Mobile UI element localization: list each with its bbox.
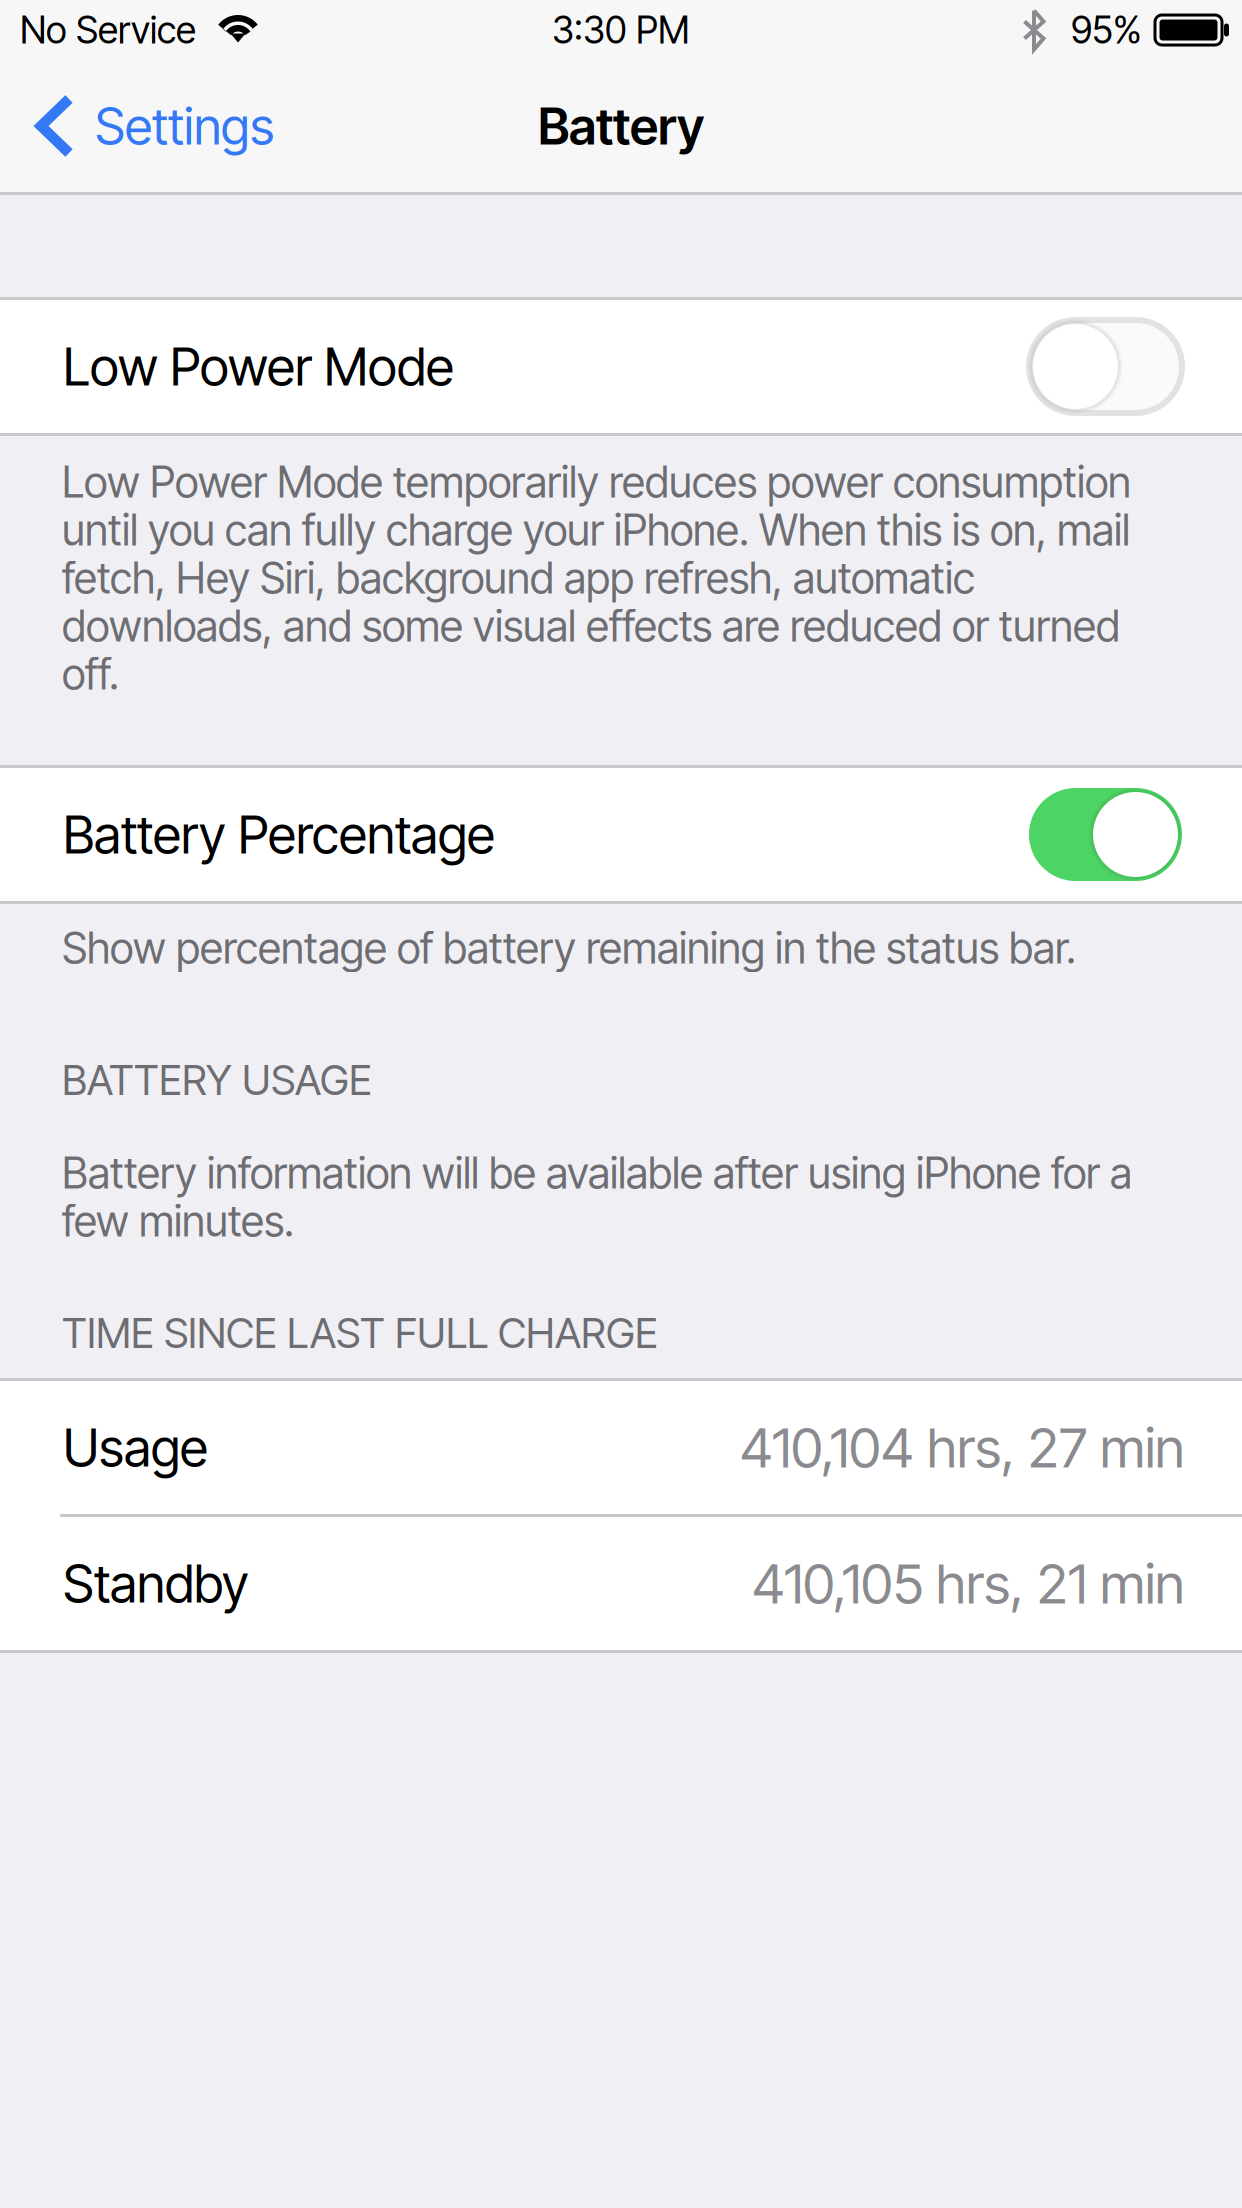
- staticText: 95%: [1071, 7, 1142, 53]
- staticText: Show percentage of battery remaining in …: [62, 922, 1076, 974]
- button[interactable]: Low Power Mode: [0, 300, 1242, 433]
- staticText: Battery: [538, 95, 704, 157]
- staticText: 410,105 hrs, 21 min: [752, 1550, 1184, 1616]
- staticText: Settings: [95, 95, 274, 157]
- button[interactable]: Battery Percentage: [0, 768, 1242, 901]
- staticText: few minutes.: [62, 1195, 294, 1247]
- staticText: BATTERY USAGE: [62, 1055, 372, 1105]
- staticText: 410,104 hrs, 27 min: [740, 1414, 1184, 1480]
- button[interactable]: Back to Settings: [0, 70, 298, 182]
- staticText: Low Power Mode: [63, 335, 454, 398]
- staticText: Low Power Mode temporarily reduces power…: [62, 456, 1131, 508]
- staticText: Usage: [63, 1416, 208, 1479]
- staticText: Battery information will be available af…: [62, 1147, 1132, 1199]
- staticText: fetch, Hey Siri, background app refresh,…: [62, 552, 975, 604]
- staticText: Battery Percentage: [63, 803, 495, 866]
- staticText: Standby: [63, 1552, 249, 1615]
- staticText: off.: [62, 648, 119, 700]
- staticText: No Service: [20, 7, 196, 53]
- staticText: 3:30 PM: [552, 7, 690, 53]
- staticText: TIME SINCE LAST FULL CHARGE: [62, 1308, 658, 1358]
- staticText: until you can fully charge your iPhone. …: [62, 504, 1130, 556]
- staticText: downloads, and some visual effects are r…: [62, 600, 1120, 652]
